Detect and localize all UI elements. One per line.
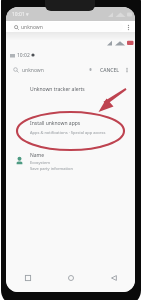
- button[interactable]: Unknown tracker alerts: [6, 86, 135, 93]
- staticText: unknown: [21, 24, 43, 31]
- staticText: CANCEL: [100, 67, 119, 74]
- button[interactable]: CANCEL: [100, 67, 119, 74]
- button[interactable]: More options: [124, 67, 130, 73]
- staticText: 10:01 ▾: [12, 11, 29, 18]
- staticText: Apps & notifications · Special app acces…: [30, 130, 106, 135]
- button[interactable]: Name: [6, 152, 135, 171]
- staticText: Save party information: [30, 166, 73, 171]
- staticText: 10:02: [17, 52, 30, 59]
- button[interactable]: Back: [92, 267, 135, 289]
- button[interactable]: Recents: [6, 267, 49, 289]
- staticText: Install unknown apps: [30, 120, 81, 127]
- staticText: Unknown tracker alerts: [30, 86, 85, 93]
- staticText: Name: [30, 152, 45, 159]
- button[interactable]: Install unknown apps: [6, 120, 135, 135]
- button[interactable]: More options: [124, 23, 132, 31]
- staticText: Ecosystem: [30, 160, 50, 165]
- button[interactable]: unknown: [10, 22, 123, 32]
- staticText: unknown: [22, 67, 44, 74]
- button[interactable]: Home: [49, 267, 92, 289]
